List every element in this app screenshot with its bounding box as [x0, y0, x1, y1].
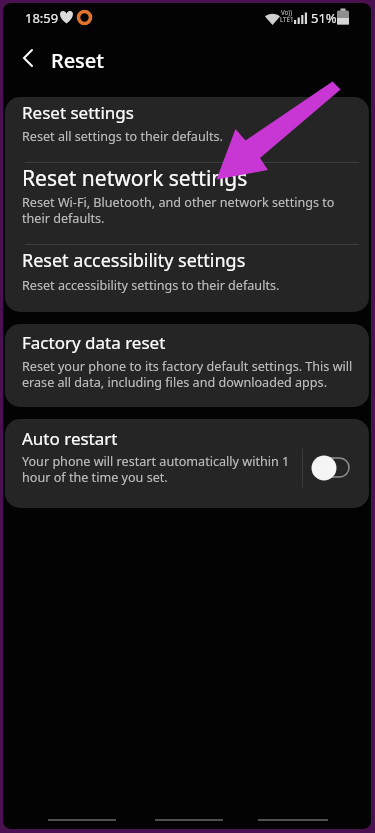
staticText: Reset [51, 47, 104, 74]
button[interactable]: Auto restart [5, 419, 369, 508]
staticText: Reset Wi-Fi, Bluetooth, and other networ… [22, 194, 335, 226]
staticText: Reset network settings [22, 164, 248, 193]
staticText: LTE1 [280, 15, 294, 23]
staticText: 18:59 [25, 9, 59, 27]
staticText: Reset all settings to their defaults. [22, 128, 223, 145]
button[interactable]: Factory data reset [5, 324, 369, 407]
staticText: Reset accessibility settings [22, 248, 246, 273]
staticText: Reset your phone to its factory default … [22, 358, 353, 390]
staticText: Vo)) [281, 8, 293, 16]
staticText: Factory data reset [22, 331, 166, 354]
button[interactable] [13, 40, 49, 76]
staticText: Reset settings [22, 101, 134, 124]
staticText: Reset accessibility settings to their de… [22, 277, 280, 294]
button[interactable]: Reset network settings [5, 163, 369, 244]
button[interactable]: Reset accessibility settings [5, 245, 369, 311]
staticText: 51% [311, 9, 337, 27]
button[interactable] [310, 453, 362, 485]
button[interactable]: Reset settings [5, 97, 369, 162]
staticText: Your phone will restart automatically wi… [22, 453, 290, 485]
staticText: Auto restart [22, 427, 118, 450]
